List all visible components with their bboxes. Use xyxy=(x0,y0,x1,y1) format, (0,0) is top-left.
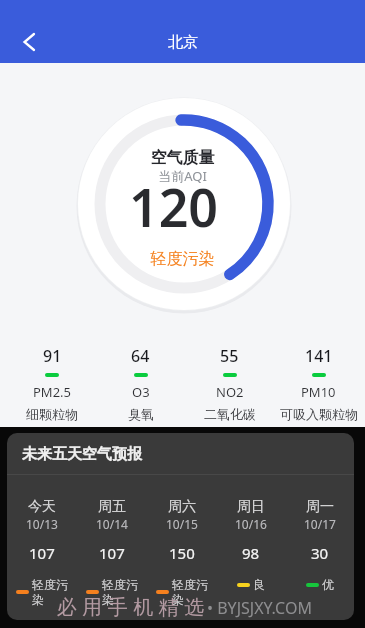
button[interactable] xyxy=(14,27,42,57)
staticText: PM2.5 xyxy=(33,383,72,401)
staticText: NO2 xyxy=(216,383,244,401)
staticText: 北京 xyxy=(168,33,198,52)
staticText: 120 xyxy=(0,171,356,242)
button[interactable]: 55 xyxy=(185,345,274,422)
staticText: 染 xyxy=(32,592,44,607)
staticText: 臭氧 xyxy=(128,406,154,422)
staticText: 10/15 xyxy=(166,516,198,532)
staticText: 染 xyxy=(172,592,184,607)
staticText: 150 xyxy=(169,543,195,563)
staticText: PM10 xyxy=(301,383,336,401)
button[interactable]: 周六 xyxy=(147,498,216,607)
button[interactable]: 未来五天空气预报 xyxy=(7,433,354,620)
staticText: 良 xyxy=(253,577,265,592)
staticText: 周五 xyxy=(98,498,126,516)
staticText: 空气质量 xyxy=(0,148,365,168)
staticText: 轻度污 xyxy=(32,577,68,592)
staticText: 10/14 xyxy=(96,516,128,532)
staticText: 98 xyxy=(242,543,260,563)
button[interactable]: 64 xyxy=(96,345,185,422)
staticText: 必用手机精选 xyxy=(54,595,207,620)
staticText: 未来五天空气预报 xyxy=(22,445,142,464)
button[interactable]: 91 xyxy=(8,345,96,422)
staticText: 轻度污 xyxy=(172,577,208,592)
staticText: 107 xyxy=(99,543,125,563)
button[interactable]: 141 xyxy=(274,345,363,422)
staticText: 细颗粒物 xyxy=(26,406,78,422)
staticText: 30 xyxy=(311,543,329,563)
button[interactable]: 周一 xyxy=(285,498,354,592)
staticText: 55 xyxy=(220,345,239,367)
staticText: 10/17 xyxy=(304,516,336,532)
staticText: 轻度污染 xyxy=(0,249,365,269)
staticText: 10/13 xyxy=(26,516,58,532)
staticText: 91 xyxy=(43,345,62,367)
staticText: 二氧化碳 xyxy=(204,406,256,422)
staticText: 107 xyxy=(29,543,55,563)
staticText: 周六 xyxy=(168,498,196,516)
staticText: 优 xyxy=(322,577,334,592)
button[interactable]: 周日 xyxy=(216,498,285,592)
staticText: 周一 xyxy=(306,498,334,516)
staticText: • BYJSJXY.COM xyxy=(207,597,312,619)
staticText: 可吸入颗粒物 xyxy=(280,406,358,422)
button[interactable]: 周五 xyxy=(77,498,147,607)
staticText: 今天 xyxy=(28,498,56,516)
staticText: O3 xyxy=(132,383,150,401)
staticText: 周日 xyxy=(237,498,265,516)
staticText: 64 xyxy=(131,345,150,367)
staticText: 10/16 xyxy=(235,516,267,532)
staticText: 染 xyxy=(102,592,114,607)
staticText: 141 xyxy=(305,345,333,367)
staticText: 当前AQI xyxy=(0,167,365,185)
staticText: 轻度污 xyxy=(102,577,138,592)
button[interactable]: 今天 xyxy=(7,498,77,607)
